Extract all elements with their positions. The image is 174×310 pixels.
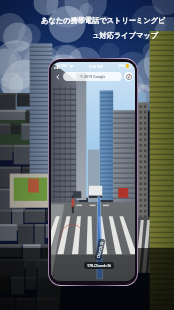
staticText: 48%: [118, 64, 125, 68]
staticText: Church St: [96, 240, 104, 259]
button[interactable]: Church St: [96, 240, 104, 259]
button[interactable]: 178-Church St: [87, 263, 111, 268]
staticText: Wifi: [61, 64, 67, 68]
staticText: 178-Church St: [87, 263, 111, 268]
button[interactable]: Compass: [124, 72, 133, 81]
staticText: ュ対応ライブマップ: [92, 31, 158, 40]
button[interactable]: Back: [53, 72, 63, 82]
staticText: 2:14 PM: [89, 64, 103, 69]
staticText: あなたの携帯電話でストリーミングビ: [41, 16, 166, 25]
staticText: © 2019 Google: [80, 74, 106, 79]
button[interactable]: © 2019 Google: [63, 72, 122, 81]
